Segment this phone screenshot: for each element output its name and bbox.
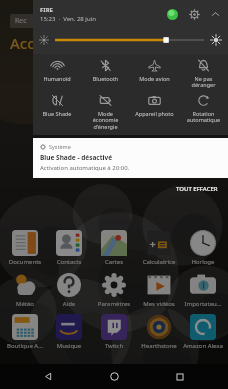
staticText: Musique	[47, 342, 91, 350]
button[interactable]: Météo	[3, 272, 47, 308]
staticText: Calculatrice	[137, 258, 181, 266]
staticText: TOUT EFFACER	[176, 185, 218, 193]
staticText: Mes vidéos	[137, 300, 181, 308]
staticText: Ne pas déranger	[180, 75, 227, 89]
button[interactable]: Mode avion	[130, 59, 179, 82]
button[interactable]: Twitch	[92, 314, 136, 350]
staticText: Mode économie d'énergie	[82, 110, 129, 131]
button[interactable]: Rec	[10, 14, 160, 28]
staticText: Humanoïd	[34, 75, 80, 82]
staticText: Mode avion	[131, 75, 178, 82]
staticText: Blue Shade - désactivé	[40, 153, 113, 162]
staticText: 15:23 · Ven. 28 juin	[40, 15, 96, 23]
staticText: Activation automatique à 20:00.	[40, 164, 130, 172]
staticText: Documents	[3, 258, 47, 266]
button[interactable]: Aide	[47, 272, 91, 308]
staticText: Bluetooth	[82, 75, 129, 82]
staticText: Importateu…	[181, 300, 225, 308]
button[interactable]: Horloge	[181, 230, 225, 266]
button[interactable]: Appareil photo	[130, 94, 179, 117]
staticText: Twitch	[92, 342, 136, 350]
button[interactable]: Réduire	[207, 6, 223, 22]
button[interactable]: Batterie	[165, 7, 180, 22]
button[interactable]: Rotation automatique	[179, 94, 228, 124]
button[interactable]: Blue Shade	[33, 94, 81, 117]
button[interactable]: Humanoïd	[33, 59, 81, 82]
staticText: Aide	[47, 300, 91, 308]
staticText: Système	[49, 143, 71, 150]
button[interactable]: Retour	[30, 364, 66, 389]
button[interactable]: Système	[33, 138, 228, 178]
button[interactable]: Bluetooth	[81, 59, 130, 82]
staticText: Paramètres	[92, 300, 136, 308]
button[interactable]: Importateu…	[181, 272, 225, 308]
button[interactable]: Amazon Alexa	[181, 314, 225, 350]
staticText: Boutique A…	[3, 342, 47, 350]
button[interactable]: Accueil	[96, 364, 132, 389]
staticText: Blue Shade	[34, 110, 80, 117]
button[interactable]: Documents	[3, 230, 47, 266]
staticText: Rec	[15, 16, 27, 26]
staticText: Météo	[3, 300, 47, 308]
staticText: Appareil photo	[131, 110, 178, 117]
button[interactable]: Paramètres	[92, 272, 136, 308]
staticText: Rotation automatique	[180, 110, 227, 124]
button[interactable]: Mode économie d'énergie	[81, 94, 130, 131]
button[interactable]: Mes vidéos	[137, 272, 181, 308]
button[interactable]: Hearthstone	[137, 314, 181, 350]
staticText: Amazon Alexa	[181, 342, 225, 350]
button[interactable]: Paramètres	[186, 6, 202, 22]
button[interactable]: Musique	[47, 314, 91, 350]
staticText: FIRE	[40, 6, 53, 14]
staticText: Acc	[10, 33, 35, 53]
staticText: Horloge	[181, 258, 225, 266]
button[interactable]: Calculatrice	[137, 230, 181, 266]
button[interactable]: Ne pas déranger	[179, 59, 228, 89]
button[interactable]: Boutique A…	[3, 314, 47, 350]
button[interactable]: Contacts	[47, 230, 91, 266]
staticText: Contacts	[47, 258, 91, 266]
staticText: Cartes	[92, 258, 136, 266]
staticText: Hearthstone	[137, 342, 181, 350]
button[interactable]: Applications récentes	[162, 364, 198, 389]
button[interactable]: Luminosité	[39, 28, 222, 52]
button[interactable]: Cartes	[92, 230, 136, 266]
button[interactable]: TOUT EFFACER	[173, 182, 221, 196]
